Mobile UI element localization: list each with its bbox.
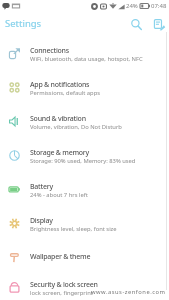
staticText: Wallpaper & theme <box>30 252 91 262</box>
staticText: 24% <box>126 2 138 10</box>
button[interactable]: Search <box>126 14 146 34</box>
staticText: Battery <box>30 182 53 192</box>
button[interactable]: Sound & vibration <box>0 104 169 138</box>
button[interactable]: Security & lock screen <box>0 270 169 300</box>
staticText: Brightness level, sleep, font size <box>30 225 117 233</box>
staticText: Storage & memory <box>30 148 89 158</box>
staticText: Security & lock screen <box>30 280 98 290</box>
staticText: 24% - about 7 hrs left <box>30 191 88 199</box>
button[interactable]: Display <box>0 206 169 240</box>
staticText: www.asus-zenfone.com <box>91 288 166 296</box>
button[interactable]: Wallpaper & theme <box>0 240 169 274</box>
staticText: 07:48 <box>151 2 167 10</box>
staticText: Volume, vibration, Do Not Disturb <box>30 123 122 131</box>
button[interactable]: Help and feedback <box>149 14 169 34</box>
staticText: App & notifications <box>30 80 90 90</box>
staticText: Display <box>30 216 53 226</box>
button[interactable]: Storage & memory <box>0 138 169 172</box>
staticText: WiFi, bluetooth, data usage, hotspot, NF… <box>30 55 143 63</box>
staticText: lock screen, fingerprint <box>30 289 93 297</box>
button[interactable]: Battery <box>0 172 169 206</box>
staticText: Settings <box>5 17 42 30</box>
staticText: Connections <box>30 46 69 56</box>
button[interactable]: Connections <box>0 36 169 70</box>
staticText: Permissions, default apps <box>30 89 100 97</box>
staticText: Storage: 90% used, Memory: 83% used <box>30 157 136 165</box>
button[interactable]: App & notifications <box>0 70 169 104</box>
staticText: Sound & vibration <box>30 114 86 124</box>
